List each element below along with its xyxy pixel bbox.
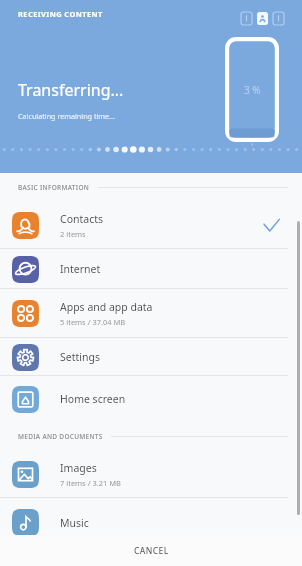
staticText: 7 items / 3.21 MB	[60, 478, 121, 488]
button[interactable]: CANCEL	[116, 539, 187, 563]
staticText: Contacts	[60, 212, 104, 226]
staticText: 2 items	[60, 229, 86, 239]
staticText: CANCEL	[134, 545, 169, 557]
staticText: BASIC INFORMATION	[18, 183, 90, 192]
staticText: Home screen	[60, 392, 126, 406]
staticText: Calculating remaining time...	[18, 111, 115, 121]
staticText: MEDIA AND DOCUMENTS	[18, 432, 103, 441]
button[interactable]: Images	[0, 450, 302, 498]
button[interactable]: Home screen	[0, 376, 302, 422]
staticText: 3 %	[244, 83, 261, 97]
staticText: RECEIVING CONTENT	[18, 9, 103, 19]
button[interactable]: Apps and app data	[0, 289, 302, 338]
staticText: Internet	[60, 262, 101, 276]
staticText: Music	[60, 516, 89, 530]
button[interactable]: Music	[0, 498, 302, 547]
button[interactable]: Contacts	[0, 202, 302, 249]
staticText: Transferring...	[18, 79, 124, 101]
button[interactable]: Internet	[0, 249, 302, 289]
staticText: Apps and app data	[60, 300, 153, 314]
staticText: 5 items / 37.04 MB	[60, 317, 126, 327]
button[interactable]: Settings	[0, 338, 302, 376]
staticText: Images	[60, 461, 97, 475]
staticText: Settings	[60, 350, 100, 364]
